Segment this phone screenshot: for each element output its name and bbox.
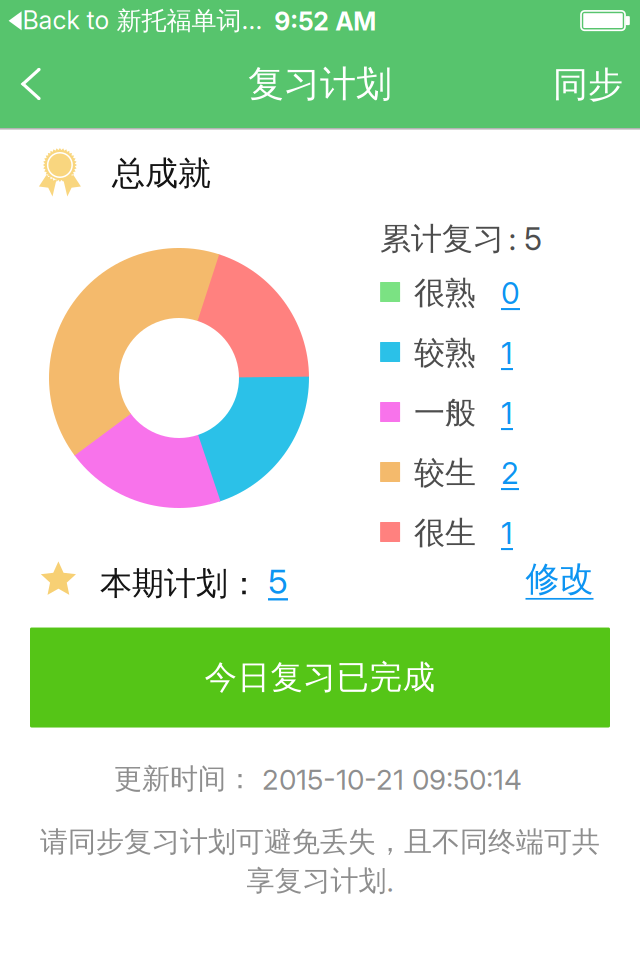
staticText: 修改 [525, 558, 593, 600]
staticText: 本期计划： [100, 563, 260, 604]
staticText: 同步 [553, 62, 623, 107]
staticText: 9:52 AM [274, 6, 376, 36]
button[interactable]: Back to 新托福单词 [9, 1, 309, 41]
staticText: 很生 [414, 513, 476, 553]
staticText: 请同步复习计划可避免丢失，且不同终端可共 [40, 824, 600, 860]
staticText: : [508, 220, 516, 258]
staticText: 5 [524, 220, 542, 258]
button[interactable]: 同步 [513, 40, 623, 128]
staticText: 较熟 [414, 333, 476, 373]
button[interactable]: 修改 [473, 557, 593, 601]
button[interactable]: 5 [268, 559, 308, 603]
staticText: 1 [501, 335, 513, 371]
button[interactable]: Back [0, 40, 62, 128]
staticText: 更新时间： 2015-10-21 09:50:14 [114, 761, 522, 797]
staticText: 享复习计划. [246, 863, 393, 899]
staticText: 0 [501, 275, 520, 311]
staticText: Back to 新托福单词... [23, 5, 263, 37]
staticText: 5 [268, 561, 288, 602]
staticText: 总成就 [112, 153, 211, 194]
button[interactable]: 今日复习已完成 [30, 627, 610, 727]
staticText: 1 [501, 515, 513, 551]
staticText: 1 [501, 395, 513, 431]
staticText: 2 [501, 455, 519, 491]
staticText: 累计复习 [380, 219, 504, 259]
staticText: 复习计划 [248, 61, 392, 107]
staticText: 较生 [414, 453, 476, 493]
staticText: 今日复习已完成 [204, 657, 435, 698]
staticText: 很熟 [414, 273, 476, 313]
staticText: 一般 [414, 393, 476, 433]
